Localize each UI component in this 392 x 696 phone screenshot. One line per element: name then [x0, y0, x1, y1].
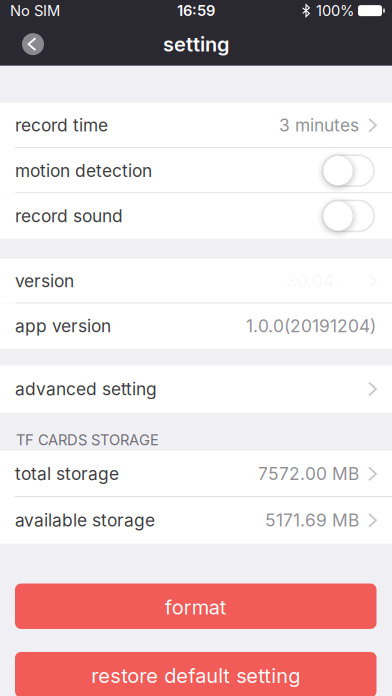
button[interactable]: record time — [0, 103, 392, 148]
button[interactable]: advanced setting — [0, 366, 392, 413]
staticText: 1.0.0(20191204) — [246, 316, 376, 336]
button[interactable]: motion detection — [0, 148, 392, 193]
staticText: motion detection — [15, 160, 152, 181]
staticText: 3 minutes — [279, 115, 359, 135]
staticText: advanced setting — [15, 379, 157, 399]
staticText: total storage — [15, 464, 119, 484]
button[interactable]: total storage — [0, 451, 392, 497]
staticText: 5171.69 MB — [265, 510, 359, 530]
staticText: 100% — [316, 2, 354, 19]
staticText: setting — [163, 32, 229, 56]
staticText: No SIM — [10, 2, 60, 19]
staticText: restore default setting — [91, 664, 300, 687]
button[interactable]: record sound — [0, 193, 392, 239]
staticText: 16:59 — [177, 2, 215, 19]
button[interactable]: Back — [22, 33, 44, 55]
staticText: format — [165, 595, 227, 619]
staticText: available storage — [15, 510, 155, 530]
staticText: version — [15, 271, 74, 291]
staticText: TF CARDS STORAGE — [16, 431, 159, 448]
button[interactable]: restore default setting — [15, 652, 376, 696]
staticText: 7572.00 MB — [258, 464, 359, 484]
button[interactable]: app version — [0, 304, 392, 349]
button[interactable]: format — [15, 583, 376, 629]
button[interactable]: version — [0, 259, 392, 304]
button[interactable]: available storage — [0, 497, 392, 544]
staticText: record time — [15, 115, 108, 135]
staticText: app version — [15, 316, 111, 336]
staticText: record sound — [15, 206, 123, 226]
